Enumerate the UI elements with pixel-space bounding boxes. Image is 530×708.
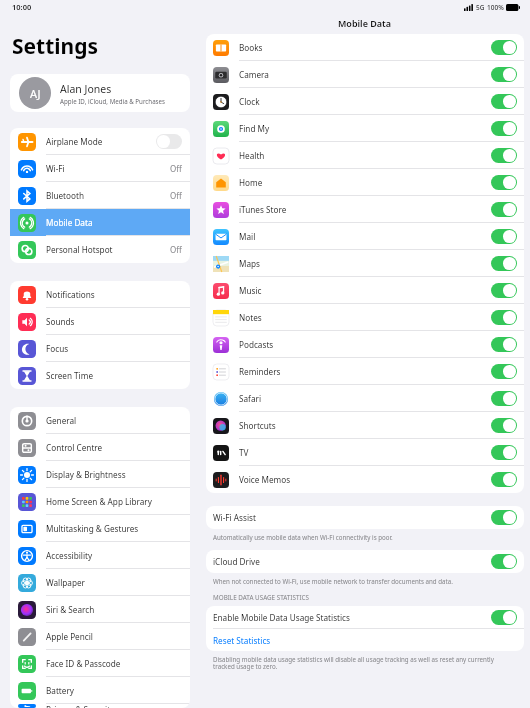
button[interactable]: Find My xyxy=(206,115,524,142)
button[interactable]: On xyxy=(491,40,517,55)
button[interactable]: Face ID & Passcode xyxy=(10,650,190,677)
button[interactable]: On xyxy=(491,175,517,190)
staticText: Reset Statistics xyxy=(213,635,271,646)
button[interactable]: On xyxy=(491,364,517,379)
button[interactable]: Accessibility xyxy=(10,542,190,569)
button[interactable]: Wi-Fi Assist xyxy=(206,506,524,529)
button[interactable]: On xyxy=(491,256,517,271)
staticText: TV xyxy=(239,447,249,458)
staticText: Personal Hotspot xyxy=(46,244,113,255)
button[interactable]: Wallpaper xyxy=(10,569,190,596)
staticText: Reminders xyxy=(239,366,281,377)
button[interactable]: Books xyxy=(206,34,524,61)
button[interactable]: Home xyxy=(206,169,524,196)
staticText: Multitasking & Gestures xyxy=(46,523,139,534)
button[interactable]: Safari xyxy=(206,385,524,412)
button[interactable]: Wi-Fi xyxy=(10,155,190,182)
staticText: Mobile Data xyxy=(338,17,392,29)
staticText: Shortcuts xyxy=(239,420,276,431)
button[interactable]: Display & Brightness xyxy=(10,461,190,488)
button[interactable]: Camera xyxy=(206,61,524,88)
button[interactable]: On xyxy=(491,94,517,109)
button[interactable]: Battery xyxy=(10,677,190,704)
button[interactable]: On xyxy=(491,391,517,406)
button[interactable]: Bluetooth xyxy=(10,182,190,209)
button[interactable]: On xyxy=(491,148,517,163)
staticText: Notes xyxy=(239,312,262,323)
staticText: Safari xyxy=(239,393,261,404)
staticText: Off xyxy=(170,244,182,255)
staticText: Settings xyxy=(12,32,99,61)
staticText: Mobile Data xyxy=(46,217,93,228)
button[interactable]: Music xyxy=(206,277,524,304)
button[interactable]: Voice Memos xyxy=(206,466,524,493)
staticText: Mail xyxy=(239,231,256,242)
button[interactable]: Privacy & Security xyxy=(10,704,190,708)
button[interactable]: On xyxy=(491,121,517,136)
button[interactable]: TV xyxy=(206,439,524,466)
button[interactable]: Personal Hotspot xyxy=(10,236,190,263)
button[interactable]: On xyxy=(491,310,517,325)
button[interactable]: On xyxy=(491,554,517,569)
button[interactable]: On xyxy=(491,337,517,352)
staticText: Disabling mobile data usage statistics w… xyxy=(213,655,510,671)
button[interactable]: Notifications xyxy=(10,281,190,308)
staticText: Siri & Search xyxy=(46,604,95,615)
staticText: Privacy & Security xyxy=(46,704,115,708)
staticText: Clock xyxy=(239,96,260,107)
button[interactable]: Siri & Search xyxy=(10,596,190,623)
staticText: Apple Pencil xyxy=(46,631,93,642)
staticText: Automatically use mobile data when Wi-Fi… xyxy=(213,533,393,541)
button[interactable]: Health xyxy=(206,142,524,169)
button[interactable]: On xyxy=(491,229,517,244)
staticText: Face ID & Passcode xyxy=(46,658,121,669)
staticText: Control Centre xyxy=(46,442,103,453)
button[interactable]: Focus xyxy=(10,335,190,362)
button[interactable]: General xyxy=(10,407,190,434)
button[interactable]: Control Centre xyxy=(10,434,190,461)
button[interactable]: iTunes Store xyxy=(206,196,524,223)
button[interactable]: On xyxy=(491,472,517,487)
button[interactable]: AJ xyxy=(10,74,190,112)
button[interactable]: On xyxy=(491,418,517,433)
staticText: Find My xyxy=(239,123,270,134)
staticText: 5G xyxy=(476,3,485,12)
button[interactable]: On xyxy=(491,67,517,82)
staticText: Off xyxy=(170,190,182,201)
staticText: Screen Time xyxy=(46,370,94,381)
button[interactable]: Off xyxy=(156,134,182,149)
button[interactable]: iCloud Drive xyxy=(206,550,524,573)
button[interactable]: Multitasking & Gestures xyxy=(10,515,190,542)
staticText: Wi-Fi Assist xyxy=(213,512,256,523)
button[interactable]: Mobile Data xyxy=(10,209,190,236)
button[interactable]: Home Screen & App Library xyxy=(10,488,190,515)
staticText: Camera xyxy=(239,69,269,80)
staticText: Display & Brightness xyxy=(46,469,126,480)
staticText: Sounds xyxy=(46,316,75,327)
button[interactable]: Apple Pencil xyxy=(10,623,190,650)
button[interactable]: Screen Time xyxy=(10,362,190,389)
button[interactable]: Sounds xyxy=(10,308,190,335)
staticText: Voice Memos xyxy=(239,474,291,485)
staticText: Maps xyxy=(239,258,260,269)
button[interactable]: On xyxy=(491,445,517,460)
button[interactable]: Reset Statistics xyxy=(206,629,524,651)
button[interactable]: Enable Mobile Data Usage Statistics xyxy=(206,606,524,629)
button[interactable]: Clock xyxy=(206,88,524,115)
button[interactable]: Podcasts xyxy=(206,331,524,358)
button[interactable]: Mail xyxy=(206,223,524,250)
button[interactable]: Maps xyxy=(206,250,524,277)
staticText: Books xyxy=(239,42,263,53)
button[interactable]: On xyxy=(491,510,517,525)
button[interactable]: Airplane Mode xyxy=(10,128,190,155)
staticText: Enable Mobile Data Usage Statistics xyxy=(213,612,350,623)
button[interactable]: Notes xyxy=(206,304,524,331)
staticText: MOBILE DATA USAGE STATISTICS xyxy=(213,593,310,602)
button[interactable]: On xyxy=(491,610,517,625)
button[interactable]: On xyxy=(491,283,517,298)
button[interactable]: Shortcuts xyxy=(206,412,524,439)
button[interactable]: Reminders xyxy=(206,358,524,385)
staticText: Podcasts xyxy=(239,339,274,350)
staticText: Wi-Fi xyxy=(46,163,65,174)
button[interactable]: On xyxy=(491,202,517,217)
